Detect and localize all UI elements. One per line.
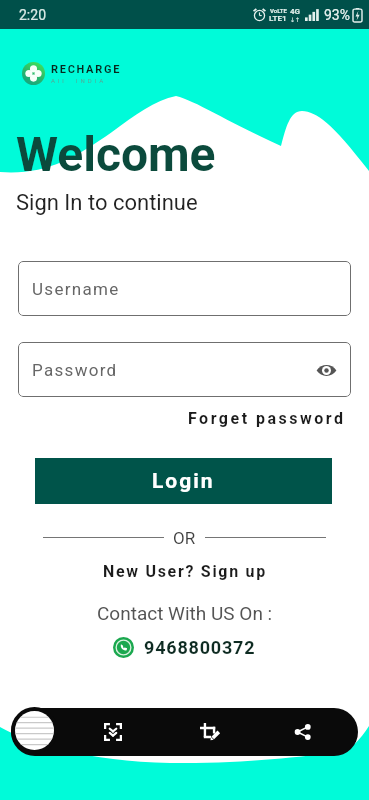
button[interactable]: Username (18, 261, 351, 316)
button[interactable]: Login (35, 458, 332, 504)
staticText: Password (32, 360, 118, 380)
staticText: LTE1 (269, 14, 287, 23)
staticText: 93% (324, 7, 350, 23)
button[interactable]: New User? Sign up (103, 562, 267, 581)
button[interactable]: Scroll capture (85, 708, 141, 756)
staticText: 2:20 (19, 7, 46, 23)
button[interactable]: Crop and edit (181, 708, 237, 756)
staticText: ↓↑ (290, 16, 301, 23)
staticText: All INDIA (51, 77, 107, 84)
button[interactable]: Screenshot preview (15, 711, 54, 750)
staticText: Contact With US On : (97, 602, 273, 624)
button[interactable]: Show password (310, 354, 342, 386)
staticText: Welcome (16, 126, 216, 182)
button[interactable]: Forget password (188, 409, 346, 428)
staticText: RECHARGE (51, 63, 122, 76)
staticText: VoLTE (270, 7, 287, 14)
staticText: 9468800372 (144, 637, 256, 658)
staticText: 4G (290, 7, 301, 16)
staticText: Username (32, 279, 120, 299)
button[interactable]: Share (275, 708, 331, 756)
button[interactable]: 9468800372 (0, 637, 369, 658)
staticText: Sign In to continue (16, 190, 198, 216)
staticText: OR (173, 528, 196, 546)
staticText: Login (152, 469, 215, 494)
button[interactable]: Password (18, 342, 351, 397)
